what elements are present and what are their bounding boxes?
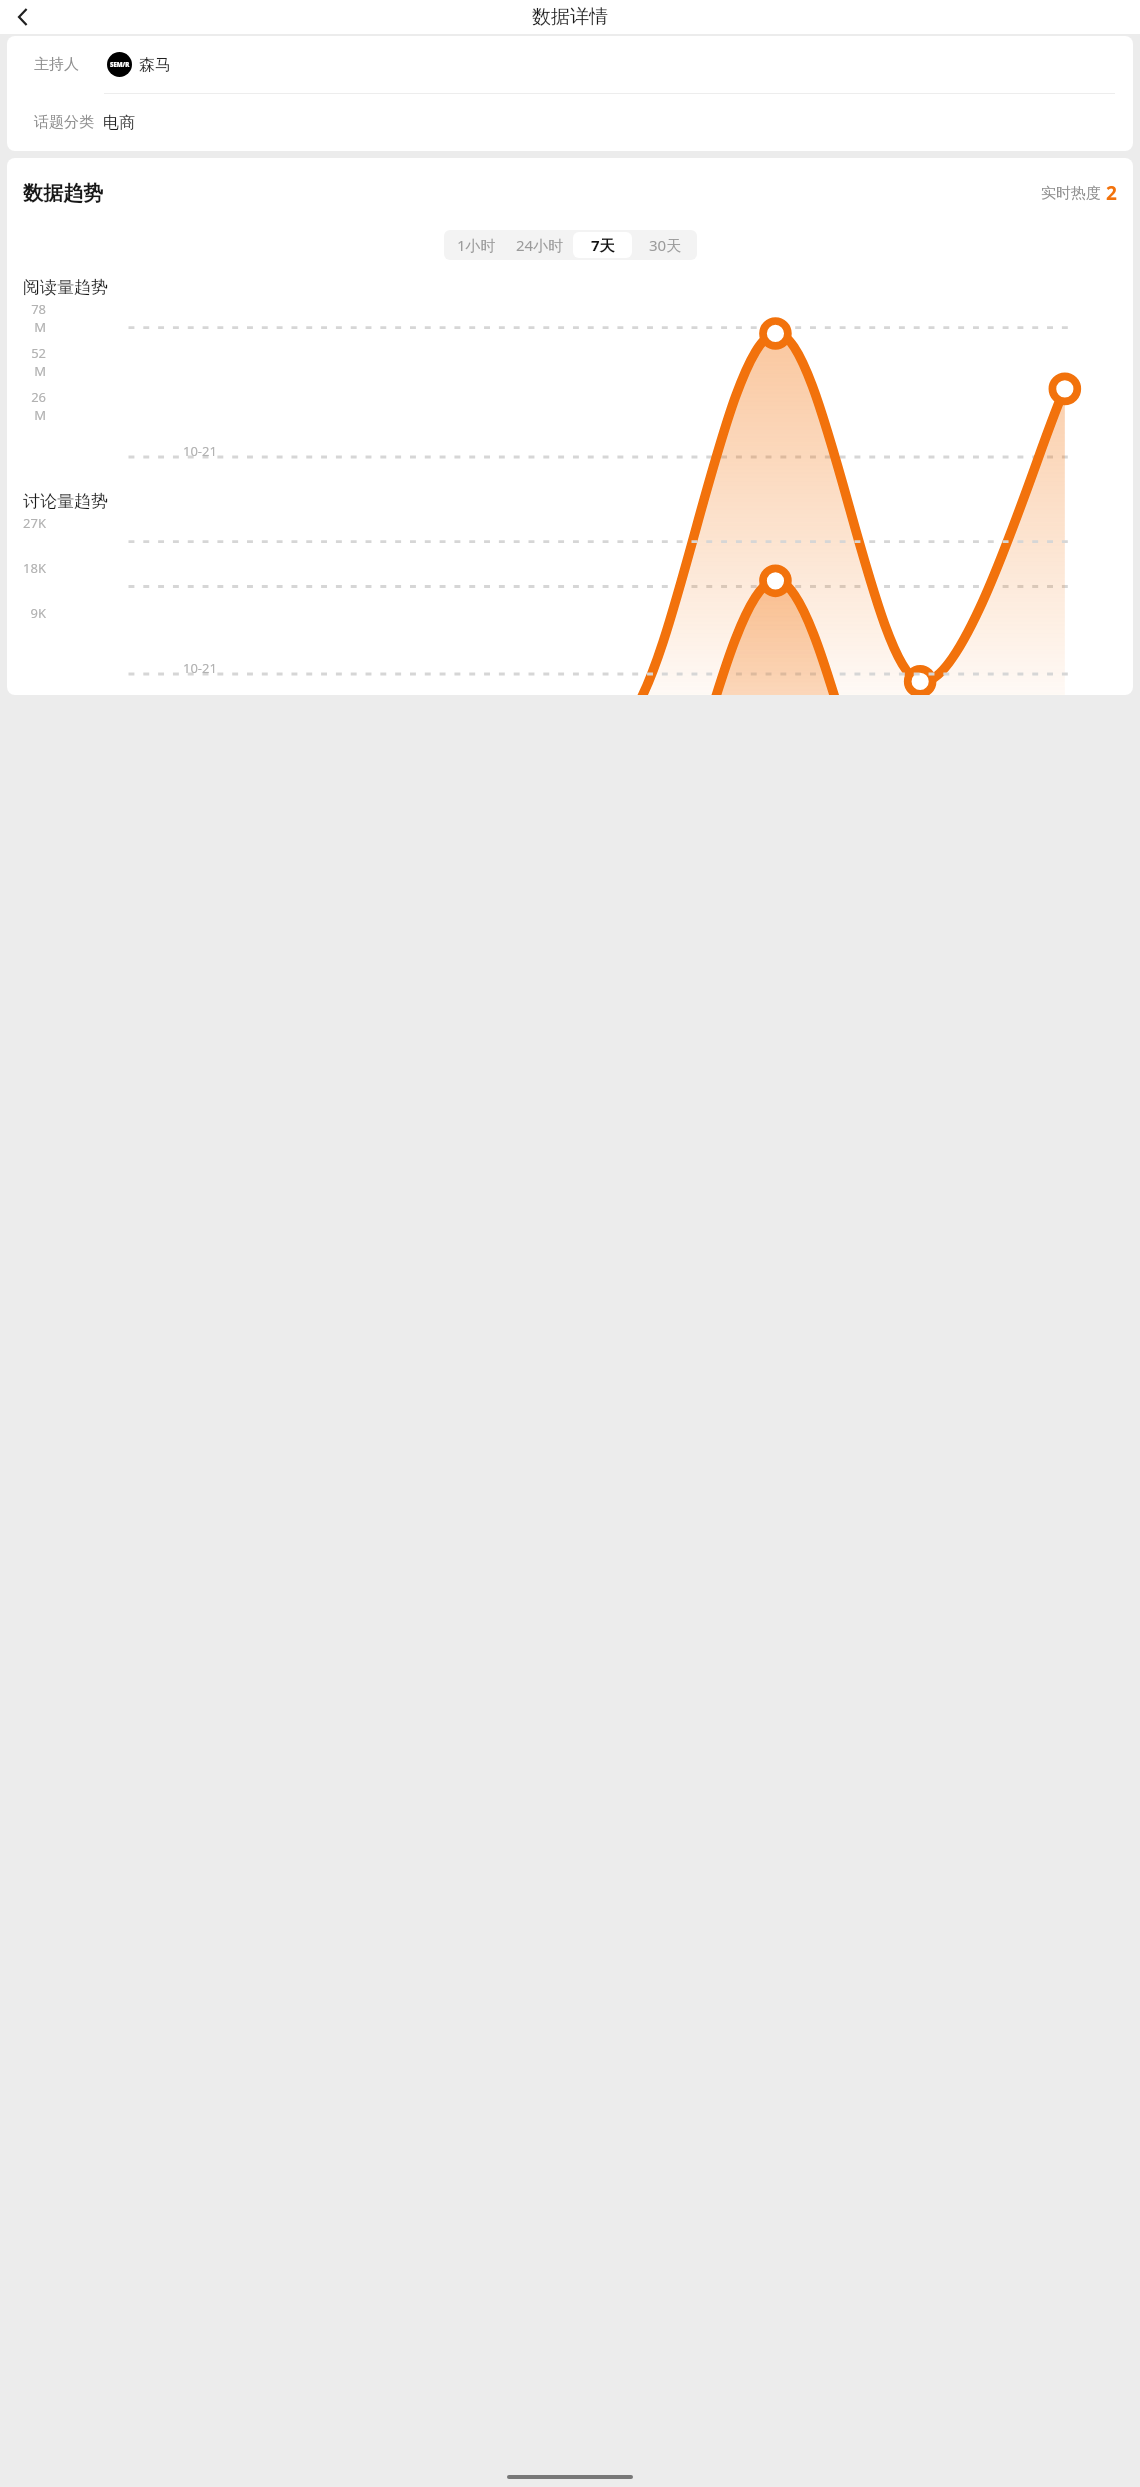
button[interactable]: 1小时 bbox=[446, 232, 506, 258]
staticText: 7天 bbox=[591, 235, 615, 255]
staticText: 2 bbox=[1106, 180, 1117, 206]
button[interactable]: 7天 bbox=[573, 232, 632, 258]
staticText: 数据趋势 bbox=[23, 181, 103, 206]
button[interactable]: 主持人 bbox=[7, 36, 1133, 93]
button[interactable]: 30天 bbox=[636, 232, 695, 258]
staticText: 26M bbox=[23, 388, 46, 424]
button[interactable]: 24小时 bbox=[510, 232, 569, 258]
staticText: 10-21 bbox=[183, 659, 217, 677]
button[interactable]: 话题分类 bbox=[7, 94, 1133, 151]
button[interactable]: Back bbox=[2, 0, 44, 34]
staticText: 话题分类 bbox=[34, 113, 94, 132]
staticText: 阅读量趋势 bbox=[23, 277, 108, 298]
staticText: 52M bbox=[23, 344, 46, 380]
staticText: 9K bbox=[23, 604, 46, 622]
staticText: 森马 bbox=[139, 55, 171, 75]
staticText: 1小时 bbox=[457, 235, 496, 255]
staticText: 18K bbox=[23, 559, 46, 577]
staticText: 27K bbox=[23, 514, 46, 532]
staticText: 10-21 bbox=[183, 442, 217, 460]
staticText: 电商 bbox=[103, 113, 135, 133]
staticText: 讨论量趋势 bbox=[23, 491, 108, 512]
staticText: 30天 bbox=[649, 235, 682, 255]
staticText: 主持人 bbox=[34, 55, 79, 74]
staticText: SEM/R bbox=[110, 61, 130, 69]
staticText: 78M bbox=[23, 300, 46, 336]
staticText: 数据详情 bbox=[532, 5, 608, 29]
staticText: 实时热度 bbox=[1041, 184, 1101, 203]
staticText: 24小时 bbox=[516, 235, 564, 255]
